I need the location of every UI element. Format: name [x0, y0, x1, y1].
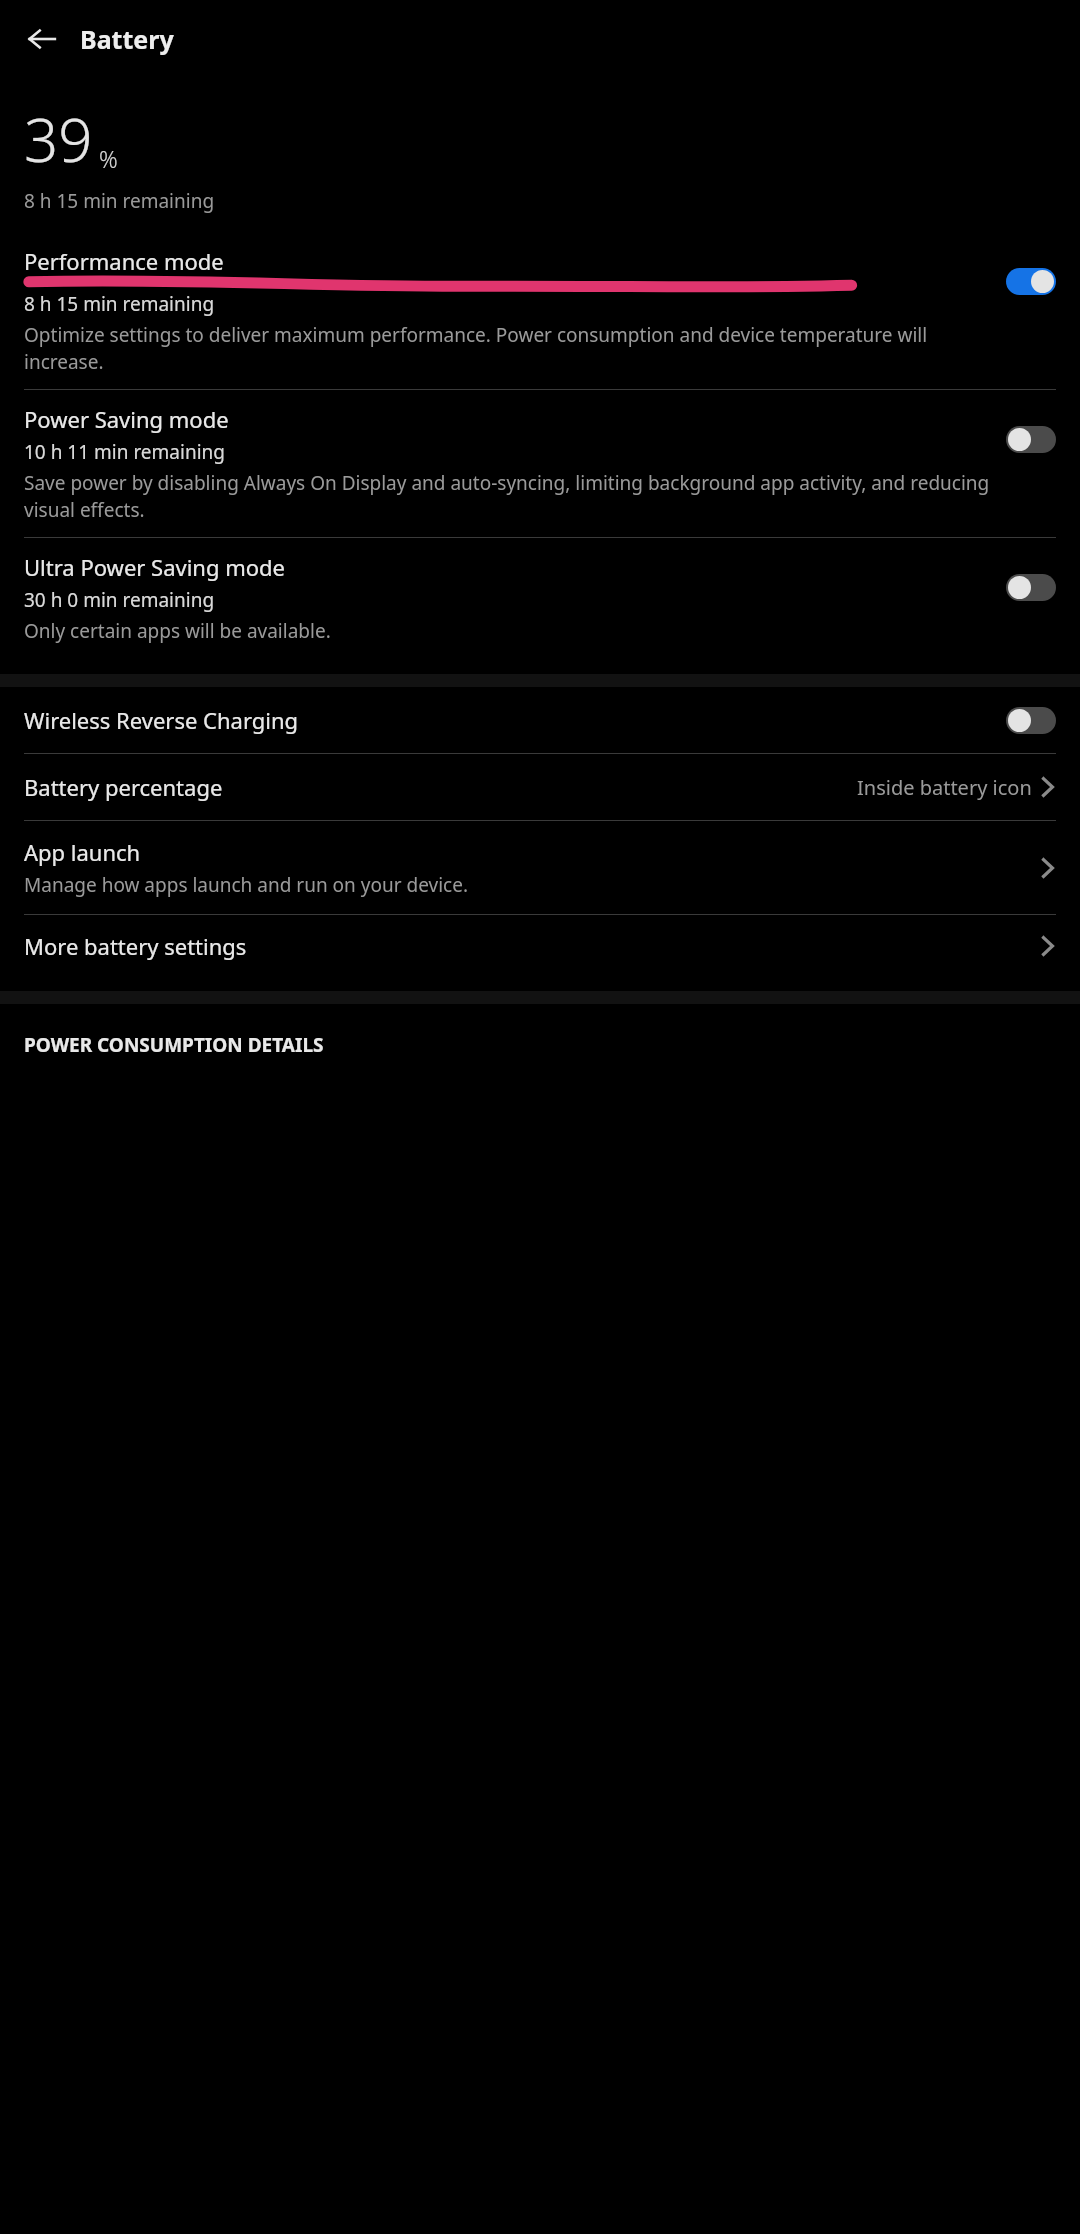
- staticText: Inside battery icon: [857, 774, 1032, 801]
- staticText: 8 h 15 min remaining: [24, 188, 215, 214]
- button[interactable]: Battery percentage: [0, 754, 1080, 820]
- button[interactable]: Performance mode: [0, 232, 1080, 389]
- button[interactable]: Back: [18, 15, 66, 63]
- staticText: Manage how apps launch and run on your d…: [24, 872, 468, 898]
- staticText: Ultra Power Saving mode: [24, 552, 286, 582]
- staticText: Wireless Reverse Charging: [24, 705, 299, 735]
- staticText: 30 h 0 min remaining: [24, 587, 215, 613]
- staticText: Battery: [80, 22, 174, 56]
- button[interactable]: Performance mode toggle: [1006, 268, 1056, 295]
- staticText: 10 h 11 min remaining: [24, 439, 225, 465]
- button[interactable]: App launch: [0, 821, 1080, 914]
- staticText: Power Saving mode: [24, 404, 229, 434]
- button[interactable]: Performance mode toggle: [1006, 268, 1056, 295]
- button[interactable]: Power Saving mode toggle: [1006, 426, 1056, 453]
- staticText: Only certain apps will be available.: [24, 618, 331, 644]
- staticText: 8 h 15 min remaining: [24, 291, 215, 317]
- staticText: App launch: [24, 837, 141, 867]
- staticText: Optimize settings to deliver maximum per…: [24, 322, 992, 375]
- staticText: More battery settings: [24, 931, 247, 961]
- button[interactable]: Ultra Power Saving mode toggle: [1006, 574, 1056, 601]
- button[interactable]: More battery settings: [0, 915, 1080, 977]
- button[interactable]: Power Saving mode toggle: [1006, 426, 1056, 453]
- staticText: 39: [24, 98, 93, 180]
- staticText: POWER CONSUMPTION DETAILS: [24, 1032, 324, 1058]
- button[interactable]: Power Saving mode: [0, 390, 1080, 537]
- button[interactable]: Wireless Reverse Charging: [0, 687, 1080, 753]
- button[interactable]: Ultra Power Saving mode: [0, 538, 1080, 658]
- staticText: %: [99, 143, 118, 174]
- staticText: Save power by disabling Always On Displa…: [24, 470, 992, 523]
- button[interactable]: Wireless Reverse Charging toggle: [1006, 707, 1056, 734]
- staticText: Performance mode: [24, 246, 224, 276]
- button[interactable]: Ultra Power Saving mode toggle: [1006, 574, 1056, 601]
- staticText: Battery percentage: [24, 772, 223, 802]
